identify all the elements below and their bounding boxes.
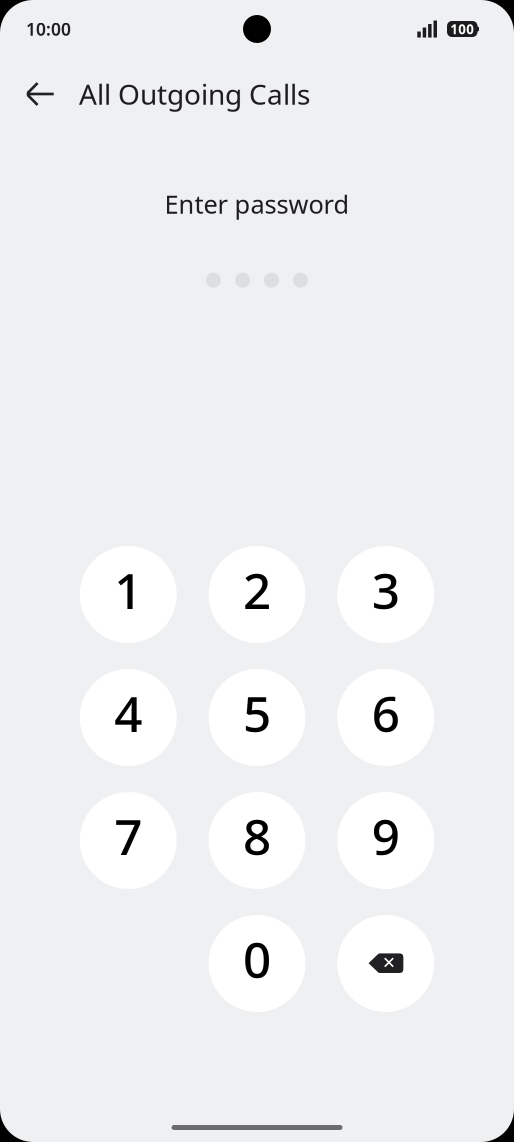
- staticText: 4: [114, 680, 142, 746]
- staticText: 9: [372, 803, 400, 869]
- staticText: 7: [114, 803, 142, 869]
- button[interactable]: 3: [337, 546, 434, 643]
- staticText: 0: [243, 926, 271, 992]
- staticText: 1: [114, 557, 142, 623]
- button[interactable]: 0: [208, 915, 305, 1012]
- button[interactable]: 2: [208, 546, 305, 643]
- button[interactable]: 7: [80, 792, 177, 889]
- staticText: 2: [243, 557, 271, 623]
- button[interactable]: 4: [80, 669, 177, 766]
- button[interactable]: Back: [12, 66, 68, 122]
- staticText: 3: [372, 557, 400, 623]
- button[interactable]: 1: [80, 546, 177, 643]
- staticText: 8: [243, 803, 271, 869]
- staticText: 100: [450, 20, 474, 38]
- staticText: 10:00: [26, 17, 71, 40]
- button[interactable]: 8: [208, 792, 305, 889]
- button[interactable]: 6: [337, 669, 434, 766]
- button[interactable]: Delete: [337, 915, 434, 1012]
- staticText: 5: [243, 680, 271, 746]
- button[interactable]: 5: [208, 669, 305, 766]
- staticText: Enter password: [164, 187, 349, 221]
- staticText: 6: [372, 680, 400, 746]
- button[interactable]: 9: [337, 792, 434, 889]
- staticText: All Outgoing Calls: [79, 75, 310, 113]
